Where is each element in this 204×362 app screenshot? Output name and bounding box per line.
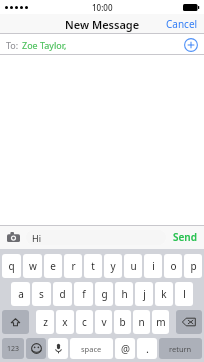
button[interactable]: u: [124, 254, 142, 278]
button[interactable]: r: [64, 254, 82, 278]
button[interactable]: Hi: [26, 230, 166, 245]
button[interactable]: d: [53, 282, 72, 306]
button[interactable]: m: [152, 310, 169, 334]
button[interactable]: Shift: [2, 310, 29, 334]
button[interactable]: g: [95, 282, 113, 306]
staticText: return: [169, 344, 192, 354]
button[interactable]: y: [104, 254, 122, 278]
staticText: Cancel: [166, 17, 198, 31]
button[interactable]: h: [115, 282, 133, 306]
staticText: l: [183, 287, 186, 301]
staticText: @: [121, 342, 130, 356]
staticText: space: [81, 344, 102, 354]
button[interactable]: n: [133, 310, 150, 334]
staticText: t: [91, 259, 95, 273]
button[interactable]: Zoe Taylor,: [22, 39, 67, 51]
staticText: x: [62, 315, 68, 329]
staticText: 10:00: [92, 2, 113, 13]
button[interactable]: Camera: [5, 229, 21, 245]
button[interactable]: t: [84, 254, 102, 278]
button[interactable]: c: [76, 310, 93, 334]
button[interactable]: l: [175, 282, 193, 306]
staticText: v: [101, 315, 107, 329]
staticText: c: [82, 315, 87, 329]
button[interactable]: Add contact: [184, 38, 198, 52]
staticText: k: [161, 287, 167, 301]
staticText: s: [39, 287, 44, 301]
staticText: .: [146, 341, 149, 356]
staticText: n: [138, 315, 145, 329]
staticText: d: [59, 287, 66, 301]
staticText: y: [110, 259, 116, 273]
staticText: New Message: [65, 17, 140, 32]
button[interactable]: i: [144, 254, 162, 278]
button[interactable]: p: [184, 254, 202, 278]
button[interactable]: Cancel: [160, 14, 204, 34]
staticText: p: [190, 259, 197, 273]
staticText: o: [170, 259, 177, 273]
staticText: q: [8, 259, 15, 273]
button[interactable]: s: [32, 282, 51, 306]
button[interactable]: q: [2, 254, 21, 278]
button[interactable]: return: [159, 338, 202, 359]
button[interactable]: b: [114, 310, 131, 334]
button[interactable]: k: [155, 282, 173, 306]
button[interactable]: @: [115, 338, 135, 359]
staticText: h: [121, 287, 128, 301]
button[interactable]: 123: [2, 338, 24, 359]
staticText: b: [119, 315, 126, 329]
staticText: i: [152, 259, 155, 273]
staticText: a: [18, 287, 24, 301]
staticText: e: [50, 259, 56, 273]
button[interactable]: o: [164, 254, 182, 278]
button[interactable]: f: [74, 282, 93, 306]
button[interactable]: space: [70, 338, 113, 359]
button[interactable]: Backspace: [176, 310, 202, 334]
button[interactable]: Dictation: [48, 338, 68, 359]
staticText: u: [130, 259, 137, 273]
button[interactable]: w: [23, 254, 42, 278]
staticText: Hi: [32, 232, 41, 244]
staticText: f: [82, 287, 86, 301]
staticText: g: [101, 287, 108, 301]
button[interactable]: e: [44, 254, 62, 278]
button[interactable]: Send: [171, 227, 199, 247]
staticText: Send: [173, 230, 197, 244]
button[interactable]: x: [56, 310, 74, 334]
staticText: z: [43, 315, 48, 329]
button[interactable]: z: [36, 310, 54, 334]
staticText: r: [71, 259, 76, 273]
button[interactable]: j: [135, 282, 153, 306]
button[interactable]: a: [11, 282, 30, 306]
staticText: w: [29, 259, 37, 273]
button[interactable]: v: [95, 310, 112, 334]
staticText: To:: [6, 39, 19, 51]
staticText: m: [156, 315, 166, 329]
button[interactable]: Emoji: [26, 338, 46, 359]
staticText: 123: [7, 344, 20, 354]
staticText: j: [143, 287, 146, 301]
button[interactable]: .: [137, 338, 157, 359]
